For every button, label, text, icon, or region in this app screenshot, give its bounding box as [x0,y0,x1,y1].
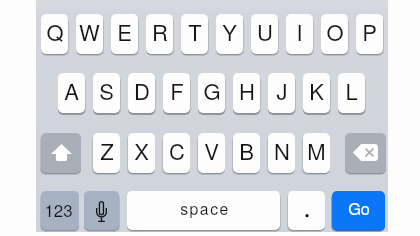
button[interactable]: Shift [41,133,81,173]
staticText: G [203,75,221,107]
staticText: W [79,16,100,48]
button[interactable]: J [268,73,295,113]
button[interactable]: M [303,133,330,173]
button[interactable]: A [58,73,85,113]
button[interactable]: space [127,191,280,230]
staticText: T [188,16,202,48]
button[interactable]: H [233,73,260,113]
staticText: U [257,16,273,48]
staticText: M [307,135,326,167]
staticText: P [362,16,377,48]
staticText: J [276,75,288,107]
staticText: D [134,75,150,107]
staticText: E [117,16,132,48]
button[interactable]: W [76,14,103,54]
button[interactable]: Go [332,191,385,230]
staticText: X [134,135,149,167]
button[interactable]: Dictate [84,191,119,230]
staticText: K [309,75,324,107]
button[interactable] [288,191,325,230]
button[interactable]: L [338,73,365,113]
staticText: 123 [44,198,73,222]
staticText: V [204,135,219,167]
staticText: O [326,16,344,48]
button[interactable]: 123 [41,191,79,230]
button[interactable]: F [163,73,190,113]
button[interactable]: C [163,133,190,173]
staticText: R [152,16,168,48]
button[interactable]: Y [216,14,243,54]
staticText: Z [100,135,114,167]
button[interactable]: O [321,14,348,54]
staticText: Q [46,16,64,48]
staticText: space [180,197,230,220]
button[interactable]: Backspace [345,133,386,173]
staticText: I [296,16,303,48]
button[interactable]: E [111,14,138,54]
staticText: C [169,135,185,167]
staticText: S [99,75,114,107]
button[interactable]: Z [93,133,120,173]
button[interactable]: G [198,73,225,113]
button[interactable]: V [198,133,225,173]
button[interactable]: X [128,133,155,173]
button[interactable]: N [268,133,295,173]
staticText: F [170,75,184,107]
button[interactable]: P [356,14,383,54]
staticText: B [239,135,254,167]
staticText: H [239,75,255,107]
staticText: L [345,75,358,107]
button[interactable]: D [128,73,155,113]
button[interactable]: R [146,14,173,54]
staticText: Go [348,196,370,219]
button[interactable]: S [93,73,120,113]
button[interactable]: Q [41,14,68,54]
staticText: Y [222,16,237,48]
button[interactable]: T [181,14,208,54]
button[interactable]: U [251,14,278,54]
button[interactable]: I [286,14,313,54]
staticText: A [64,75,79,107]
staticText: N [274,135,290,167]
button[interactable]: K [303,73,330,113]
button[interactable]: B [233,133,260,173]
